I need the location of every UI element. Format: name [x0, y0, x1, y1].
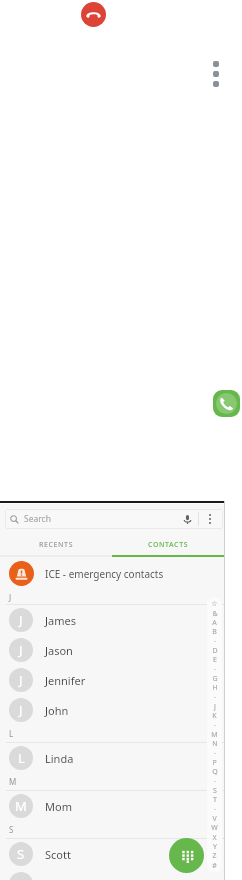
button[interactable]: ICE - emergency contacts: [0, 557, 225, 590]
staticText: S: [17, 845, 25, 863]
button[interactable]: S: [0, 839, 225, 869]
staticText: J: [9, 592, 12, 603]
staticText: RECENTS: [39, 540, 74, 550]
staticText: Q: [212, 767, 218, 777]
button[interactable]: More options: [204, 54, 228, 94]
staticText: L: [18, 749, 25, 767]
staticText: ·: [214, 665, 216, 675]
staticText: Z: [212, 851, 217, 861]
button[interactable]: J: [0, 605, 225, 635]
button[interactable]: CONTACTS: [112, 534, 225, 555]
staticText: CONTACTS: [148, 540, 189, 550]
staticText: ·: [214, 693, 216, 703]
button[interactable]: J: [0, 665, 225, 695]
button[interactable]: S: [0, 869, 225, 880]
staticText: L: [9, 728, 14, 739]
staticText: T: [213, 795, 217, 805]
staticText: M: [9, 776, 17, 787]
button[interactable]: L: [0, 743, 225, 773]
staticText: G: [212, 674, 218, 684]
staticText: Jennifer: [45, 673, 86, 688]
staticText: J: [214, 702, 216, 712]
button[interactable]: Call: [213, 390, 240, 417]
staticText: J: [19, 611, 23, 629]
staticText: E: [213, 655, 217, 665]
button[interactable]: Alphabet index: [207, 597, 222, 873]
staticText: D: [212, 646, 218, 656]
staticText: Search: [24, 513, 51, 525]
staticText: H: [212, 683, 218, 693]
staticText: ·: [214, 721, 216, 731]
button[interactable]: J: [0, 695, 225, 725]
staticText: ·: [214, 749, 216, 759]
staticText: A: [212, 618, 217, 628]
staticText: X: [212, 833, 217, 843]
button[interactable]: RECENTS: [0, 534, 112, 555]
staticText: M: [15, 797, 27, 815]
button[interactable]: End call: [81, 2, 106, 27]
staticText: K: [212, 711, 217, 721]
staticText: B: [212, 627, 217, 637]
staticText: ·: [214, 777, 216, 787]
staticText: ·: [214, 805, 216, 815]
staticText: P: [212, 758, 217, 768]
staticText: N: [212, 739, 218, 749]
staticText: S: [213, 786, 217, 796]
staticText: Y: [213, 842, 217, 852]
button[interactable]: More options: [199, 509, 221, 529]
button[interactable]: Search: [5, 509, 223, 529]
button[interactable]: Dialpad: [169, 838, 204, 873]
staticText: W: [211, 823, 218, 833]
staticText: James: [45, 613, 76, 628]
staticText: S: [9, 824, 14, 835]
staticText: &: [212, 609, 218, 619]
staticText: #: [212, 861, 217, 871]
staticText: J: [19, 701, 23, 719]
staticText: Scott: [45, 847, 71, 862]
staticText: J: [19, 641, 23, 659]
button[interactable]: M: [0, 791, 225, 821]
staticText: Mom: [45, 799, 72, 814]
button[interactable]: J: [0, 635, 225, 665]
staticText: J: [19, 671, 23, 689]
staticText: Jason: [45, 643, 73, 658]
staticText: ·: [214, 637, 216, 647]
staticText: John: [45, 703, 69, 718]
button[interactable]: Voice search: [176, 509, 198, 529]
staticText: M: [211, 730, 218, 740]
staticText: ICE - emergency contacts: [45, 567, 164, 581]
staticText: ☆: [211, 600, 218, 608]
staticText: Linda: [45, 751, 74, 766]
staticText: V: [212, 814, 217, 824]
